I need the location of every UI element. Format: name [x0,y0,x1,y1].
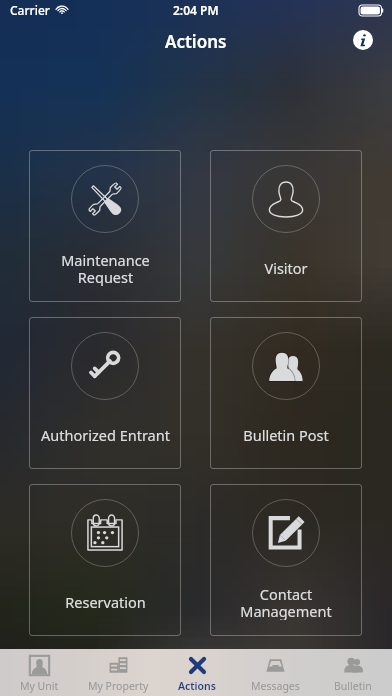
button[interactable]: My Property [79,649,158,696]
button[interactable]: Bulletin Post [210,317,362,469]
button[interactable]: Maintenance Request [29,150,181,302]
staticText: Maintenance Request [61,250,150,286]
button[interactable]: Contact Management [210,484,362,636]
staticText: Bulletin [334,679,372,693]
staticText: 2:04 PM [173,2,219,18]
staticText: Authorized Entrant [41,425,170,445]
button[interactable]: Actions [158,649,236,696]
staticText: Actions [165,30,227,53]
staticText: Reservation [65,592,146,612]
button[interactable]: Authorized Entrant [29,317,181,469]
button[interactable]: Bulletin [314,649,392,696]
staticText: Messages [251,679,300,693]
staticText: Actions [178,679,216,693]
button[interactable]: Messages [236,649,314,696]
staticText: My Property [88,679,149,693]
staticText: Visitor [264,258,308,278]
staticText: My Unit [20,679,59,693]
staticText: Carrier [10,2,50,18]
staticText: Bulletin Post [243,425,329,445]
button[interactable]: Visitor [210,150,362,302]
button[interactable]: Information [353,30,373,50]
staticText: Contact Management [240,584,332,620]
button[interactable]: My Unit [0,649,79,696]
button[interactable]: Reservation [29,484,181,636]
